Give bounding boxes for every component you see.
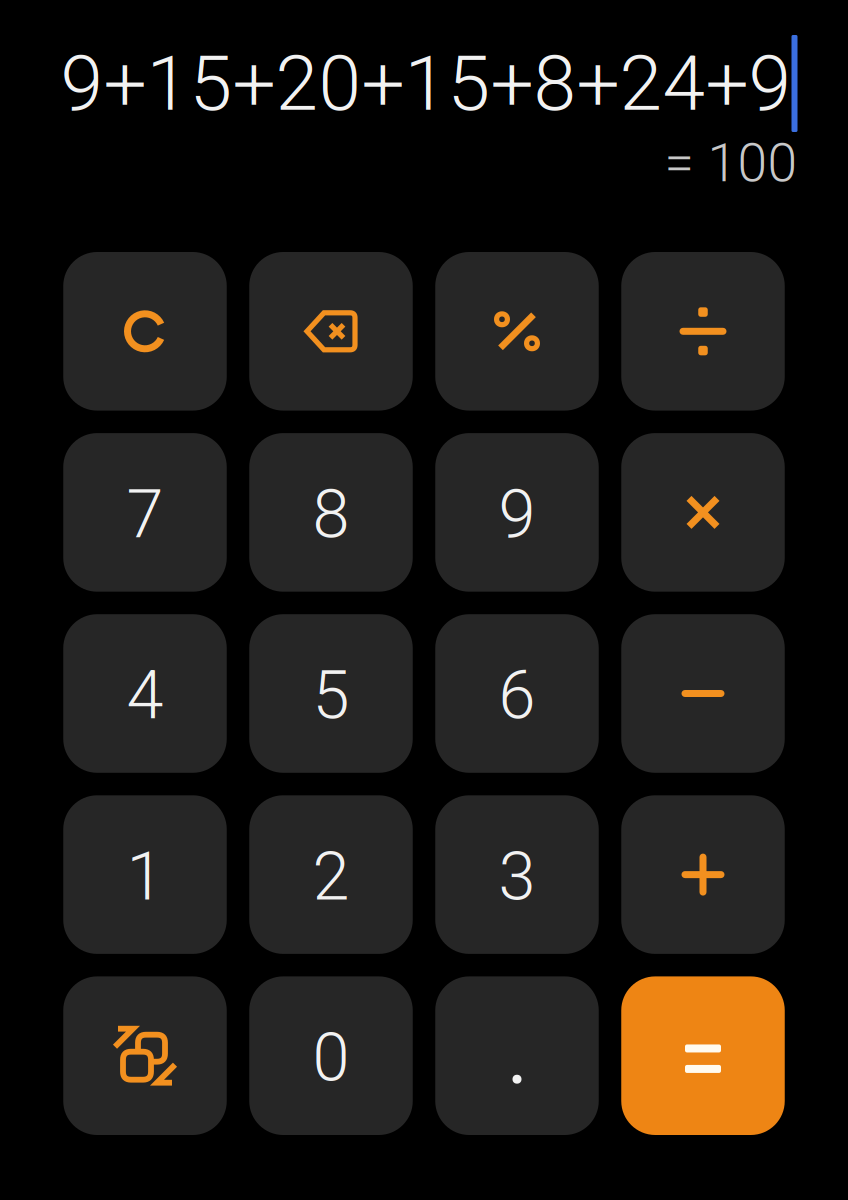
staticText: 9 (498, 475, 535, 553)
staticText: 4 (126, 656, 163, 734)
button[interactable]: 3 (435, 795, 599, 954)
button[interactable]: Divide (621, 252, 785, 411)
button[interactable]: 7 (63, 433, 227, 592)
staticText: 2 (312, 837, 349, 916)
staticText: 9+15+20+15+8+24+9 (60, 39, 791, 128)
staticText: 0 (312, 1019, 349, 1097)
button[interactable]: Subtract (621, 614, 785, 773)
button[interactable]: Equals (621, 976, 785, 1135)
button[interactable]: Add (621, 795, 785, 954)
button[interactable]: 9 (435, 433, 599, 592)
staticText: = 100 (664, 132, 797, 194)
button[interactable]: 6 (435, 614, 599, 773)
button[interactable]: 8 (249, 433, 413, 592)
staticText: 3 (498, 837, 535, 916)
button[interactable]: 1 (63, 795, 227, 954)
button[interactable]: 2 (249, 795, 413, 954)
staticText: 7 (126, 475, 163, 553)
staticText: 6 (498, 656, 535, 734)
button[interactable]: Percent (435, 252, 599, 411)
staticText: 5 (312, 656, 349, 734)
button[interactable]: Multiply (621, 433, 785, 592)
button[interactable]: Delete (249, 252, 413, 411)
button[interactable]: 4 (63, 614, 227, 773)
staticText: 8 (312, 475, 349, 553)
button[interactable]: Decimal point (435, 976, 599, 1135)
button[interactable]: 0 (249, 976, 413, 1135)
staticText: 1 (126, 837, 163, 916)
button[interactable]: Clear (63, 252, 227, 411)
button[interactable]: 5 (249, 614, 413, 773)
button[interactable]: Convert (63, 976, 227, 1135)
